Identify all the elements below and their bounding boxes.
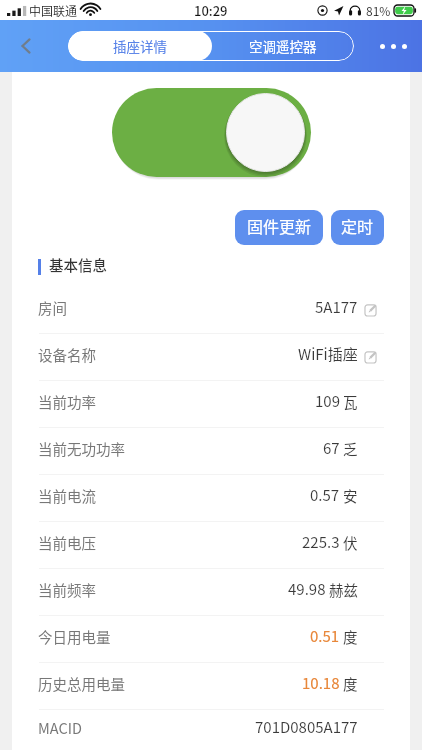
staticText: 67 xyxy=(323,440,340,458)
staticText: 伏 xyxy=(343,535,358,552)
button[interactable]: 当前功率 xyxy=(12,381,410,427)
button[interactable]: MACID xyxy=(12,710,410,750)
staticText: 固件更新 xyxy=(247,218,312,237)
staticText: 10:29 xyxy=(194,1,228,20)
button[interactable]: 当前无功功率 xyxy=(12,428,410,474)
staticText: WiFi插座 xyxy=(298,346,358,364)
button[interactable]: Back xyxy=(6,26,46,66)
button[interactable]: 设备名称 xyxy=(12,334,410,380)
staticText: 基本信息 xyxy=(49,257,107,274)
staticText: 10.18 xyxy=(302,675,340,693)
button[interactable]: 当前电压 xyxy=(12,522,410,568)
staticText: 空调遥控器 xyxy=(249,36,317,56)
staticText: 5A177 xyxy=(315,299,358,317)
staticText: 当前无功功率 xyxy=(38,441,125,458)
staticText: 当前频率 xyxy=(38,582,96,599)
button[interactable]: 固件更新 xyxy=(235,210,323,245)
staticText: 当前电压 xyxy=(38,535,96,552)
button[interactable]: 空调遥控器 xyxy=(212,31,354,61)
button[interactable]: 房间 xyxy=(12,287,410,333)
staticText: 安 xyxy=(343,488,358,505)
staticText: 当前功率 xyxy=(38,394,96,411)
button[interactable]: 历史总用电量 xyxy=(12,663,410,709)
button[interactable]: 今日用电量 xyxy=(12,616,410,662)
staticText: 今日用电量 xyxy=(38,629,111,646)
button[interactable]: 定时 xyxy=(331,210,384,245)
staticText: 房间 xyxy=(38,300,67,317)
staticText: 定时 xyxy=(341,218,374,237)
staticText: 81% xyxy=(366,2,391,19)
staticText: 设备名称 xyxy=(38,347,96,364)
button[interactable]: More options xyxy=(372,25,414,67)
staticText: 赫兹 xyxy=(329,582,358,599)
button[interactable]: 插座详情 xyxy=(68,31,212,61)
staticText: 历史总用电量 xyxy=(38,676,125,693)
staticText: 瓦 xyxy=(343,394,358,411)
staticText: 插座详情 xyxy=(113,36,167,56)
staticText: 当前电流 xyxy=(38,488,96,505)
staticText: 度 xyxy=(343,676,358,693)
staticText: MACID xyxy=(38,720,82,737)
staticText: 701D0805A177 xyxy=(255,719,358,737)
staticText: 0.57 xyxy=(310,487,340,505)
button[interactable]: 当前电流 xyxy=(12,475,410,521)
staticText: 49.98 xyxy=(288,581,326,599)
button[interactable]: Power toggle xyxy=(108,84,315,181)
staticText: 中国联通 xyxy=(29,2,78,19)
staticText: 乏 xyxy=(343,441,358,458)
staticText: 225.3 xyxy=(302,534,340,552)
staticText: 0.51 xyxy=(310,628,340,646)
staticText: 109 xyxy=(315,393,340,411)
button[interactable]: 当前频率 xyxy=(12,569,410,615)
staticText: 度 xyxy=(343,629,358,646)
